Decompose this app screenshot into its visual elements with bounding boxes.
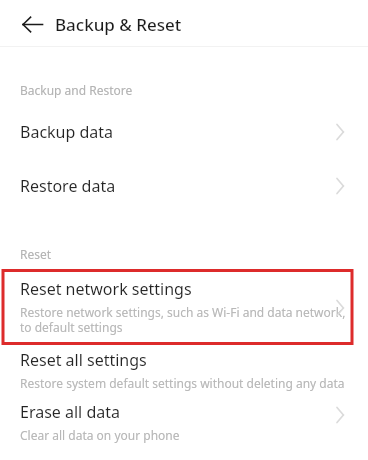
staticText: Reset all settings [20,349,147,371]
staticText: Clear all data on your phone [20,427,180,443]
button[interactable]: Restore data [0,161,368,211]
staticText: Reset network settings [20,278,192,300]
staticText: Backup & Reset [55,13,182,36]
button[interactable]: Reset network settings [0,270,368,344]
staticText: Backup data [20,121,114,143]
button[interactable]: Backup data [0,107,368,157]
button[interactable]: Back [17,9,47,39]
staticText: Reset [20,246,52,262]
staticText: Restore system default settings without … [20,375,345,391]
button[interactable]: Erase all data [0,397,368,445]
staticText: Erase all data [20,401,120,423]
staticText: Backup and Restore [20,82,133,98]
staticText: Restore data [20,175,116,197]
button[interactable]: Reset all settings [0,345,368,393]
staticText: Restore network settings, such as Wi-Fi … [20,304,348,335]
